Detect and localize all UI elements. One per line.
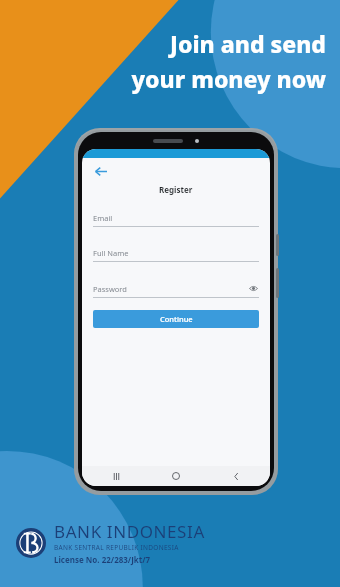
staticText: License No. 22/283/Jkt/7 bbox=[54, 554, 151, 565]
staticText: your money now bbox=[131, 63, 326, 94]
staticText: BANK SENTRAL REPUBLIK INDONESIA bbox=[54, 543, 179, 552]
staticText: Email bbox=[93, 213, 259, 223]
staticText: Full Name bbox=[93, 248, 259, 258]
staticText: Register bbox=[159, 184, 193, 195]
button[interactable]: Continue bbox=[93, 310, 259, 328]
button[interactable]: Recents bbox=[108, 468, 124, 484]
button[interactable]: Email bbox=[93, 213, 259, 227]
staticText: Join and send bbox=[170, 28, 326, 59]
staticText: Continue bbox=[160, 314, 193, 324]
button[interactable]: Full Name bbox=[93, 248, 259, 262]
staticText: Password bbox=[93, 284, 248, 294]
button[interactable]: Back bbox=[90, 161, 110, 181]
button[interactable]: Back bbox=[228, 468, 244, 484]
staticText: BANK INDONESIA bbox=[54, 520, 205, 543]
button[interactable]: Password bbox=[93, 283, 259, 298]
button[interactable]: Home bbox=[168, 468, 184, 484]
button[interactable]: Show password bbox=[248, 283, 259, 294]
